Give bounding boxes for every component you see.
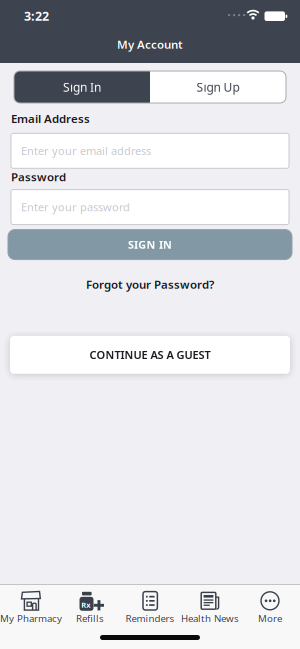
button[interactable]: Reminders — [120, 591, 180, 625]
button[interactable]: Rx — [60, 591, 120, 625]
button[interactable]: Sign Up — [150, 71, 286, 103]
staticText: Reminders — [125, 612, 174, 625]
staticText: CONTINUE AS A GUEST — [89, 347, 210, 362]
staticText: Enter your password — [21, 200, 130, 214]
button[interactable]: SIGN IN — [8, 229, 292, 259]
staticText: Forgot your Password? — [86, 276, 214, 292]
staticText: Password — [11, 169, 66, 185]
staticText: Rx — [81, 600, 90, 610]
staticText: Sign In — [63, 79, 101, 95]
button[interactable]: Health News — [180, 591, 240, 625]
staticText: Refills — [76, 612, 104, 625]
staticText: Health News — [181, 612, 239, 625]
button[interactable]: CONTINUE AS A GUEST — [10, 336, 290, 374]
staticText: My Pharmacy — [0, 612, 62, 625]
button[interactable]: Sign In — [14, 71, 150, 103]
staticText: More — [258, 612, 282, 625]
staticText: Email Address — [11, 111, 90, 126]
staticText: Sign Up — [196, 79, 239, 95]
button[interactable]: More — [240, 591, 300, 625]
staticText: My Account — [117, 37, 183, 52]
staticText: Enter your email address — [21, 143, 151, 158]
staticText: 3:22 — [24, 8, 49, 24]
staticText: SIGN IN — [128, 237, 172, 252]
button[interactable]: My Pharmacy — [0, 591, 60, 625]
button[interactable]: Forgot your Password? — [86, 276, 214, 292]
